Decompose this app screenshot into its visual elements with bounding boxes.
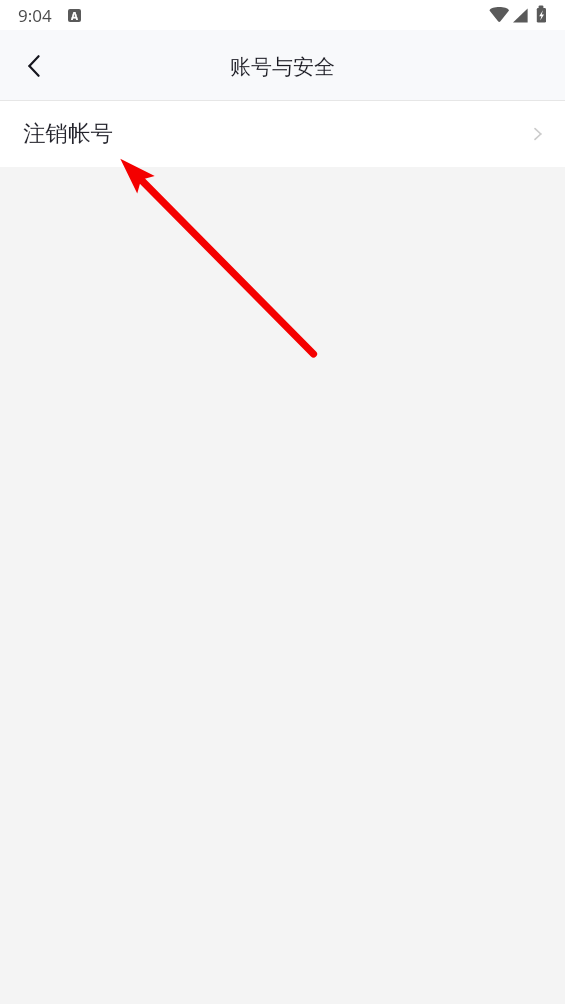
staticText: 9:04 [18,4,52,27]
button[interactable]: 注销帐号 [0,101,565,167]
staticText: A [71,9,78,22]
staticText: 注销帐号 [23,119,113,147]
button[interactable]: Back [0,31,68,101]
staticText: 账号与安全 [230,54,335,80]
